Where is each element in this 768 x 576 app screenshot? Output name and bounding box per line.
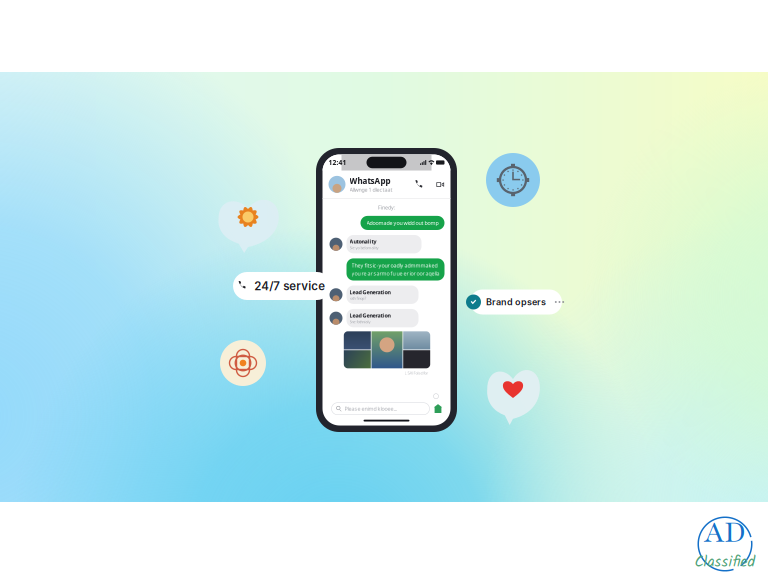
staticText: ioth finqe? bbox=[349, 296, 366, 301]
button[interactable]: 24/7 service bbox=[233, 272, 331, 300]
button[interactable]: Please enimd klooee... bbox=[331, 403, 429, 415]
staticText: Finedy: bbox=[378, 204, 395, 211]
staticText: Sie yo belomality bbox=[349, 245, 378, 250]
staticText: Classified bbox=[694, 550, 755, 575]
staticText: AD bbox=[704, 512, 746, 552]
button[interactable]: Brand opsers bbox=[470, 289, 562, 314]
staticText: Lead Generation bbox=[349, 312, 390, 319]
staticText: Lead Generation bbox=[349, 288, 390, 296]
staticText: Brand opsers bbox=[486, 296, 546, 307]
staticText: Adoomade you widd out bomp bbox=[366, 219, 438, 226]
staticText: Allwnge 1 dlectaat bbox=[349, 186, 392, 193]
staticText: Sne fothnialy bbox=[349, 319, 370, 324]
staticText: They fitsic-your oadly admmmaked bbox=[351, 262, 437, 269]
staticText: Autonality bbox=[349, 238, 376, 245]
staticText: 24/7 service bbox=[254, 279, 325, 293]
button[interactable]: Home bbox=[433, 404, 442, 414]
staticText: Please enimd klooee... bbox=[344, 405, 396, 412]
staticText: L 5/4 Folselfor bbox=[404, 370, 428, 376]
staticText: WhatsApp bbox=[349, 175, 390, 186]
staticText: you re ar sarmo fu ue er ior oor aqella bbox=[351, 270, 439, 277]
staticText: 12:41 bbox=[328, 158, 346, 167]
button[interactable]: WhatsApp bbox=[322, 170, 450, 198]
